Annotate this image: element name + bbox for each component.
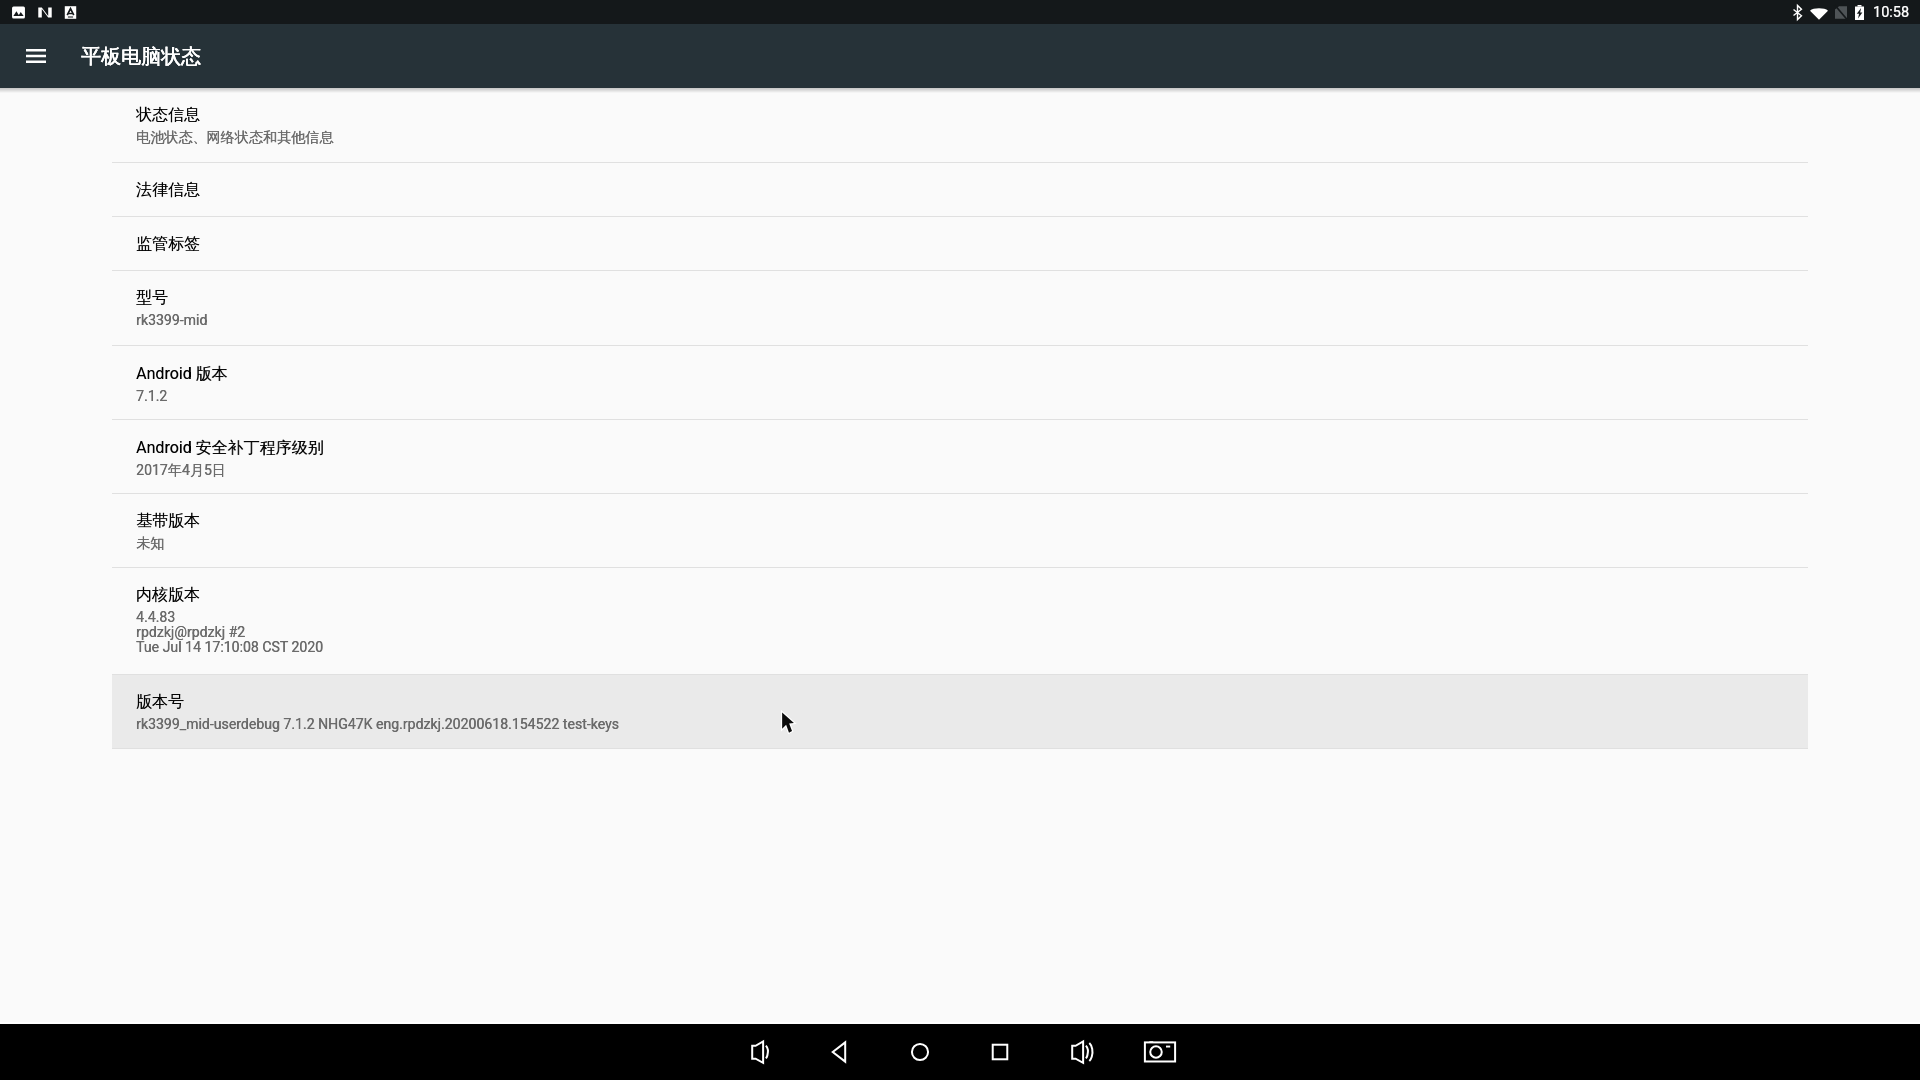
button[interactable]: Volume down — [737, 1029, 783, 1075]
button[interactable]: Open navigation drawer — [8, 28, 64, 84]
staticText: rk3399_mid-userdebug 7.1.2 NHG47K eng.rp… — [136, 717, 619, 732]
staticText: 电池状态、网络状态和其他信息 — [136, 130, 334, 146]
staticText: 4.4.83 — [136, 610, 176, 625]
button[interactable]: Home — [897, 1029, 943, 1075]
button[interactable]: 监管标签 — [112, 217, 1808, 270]
staticText: Tue Jul 14 17:10:08 CST 2020 — [136, 640, 324, 655]
staticText: 未知 — [136, 536, 165, 552]
button[interactable]: 版本号 — [112, 675, 1808, 748]
staticText: 基带版本 — [136, 511, 200, 531]
staticText: 平板电脑状态 — [81, 44, 201, 69]
button[interactable]: 法律信息 — [112, 163, 1808, 216]
button[interactable]: Recent apps — [977, 1029, 1023, 1075]
button[interactable]: 状态信息 — [112, 88, 1808, 162]
staticText: rk3399-mid — [136, 313, 208, 328]
staticText: 监管标签 — [136, 234, 200, 254]
button[interactable]: Back — [817, 1029, 863, 1075]
button[interactable]: 基带版本 — [112, 494, 1808, 567]
staticText: 7.1.2 — [136, 389, 168, 404]
staticText: Android 版本 — [136, 363, 228, 384]
button[interactable]: 型号 — [112, 271, 1808, 345]
staticText: 型号 — [136, 288, 168, 308]
staticText: 版本号 — [136, 692, 184, 712]
button[interactable]: Screenshot — [1137, 1029, 1183, 1075]
staticText: 2017年4月5日 — [136, 463, 226, 479]
staticText: 状态信息 — [136, 105, 200, 125]
staticText: Android 安全补丁程序级别 — [136, 437, 324, 458]
button[interactable]: 内核版本 — [112, 568, 1808, 674]
staticText: rpdzkj@rpdzkj #2 — [136, 625, 246, 640]
button[interactable]: Android 安全补丁程序级别 — [112, 420, 1808, 493]
button[interactable]: Volume up — [1057, 1029, 1103, 1075]
staticText: 内核版本 — [136, 585, 200, 605]
button[interactable]: Android 版本 — [112, 346, 1808, 419]
staticText: 10:58 — [1873, 4, 1910, 21]
staticText: 法律信息 — [136, 180, 200, 200]
